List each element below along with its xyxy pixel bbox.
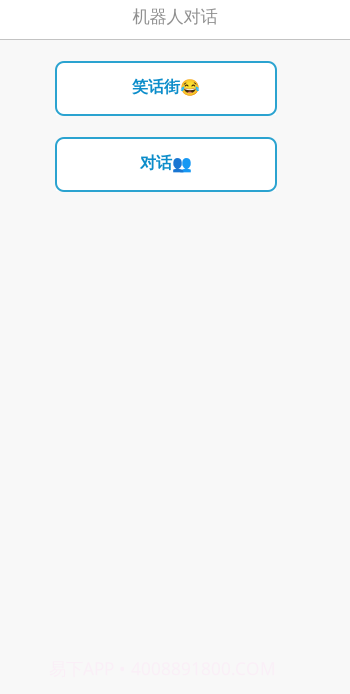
- button[interactable]: 对话👥: [56, 138, 276, 191]
- staticText: 机器人对话: [132, 6, 217, 27]
- staticText: 对话👥: [140, 153, 192, 173]
- staticText: 笑话街😂: [132, 77, 200, 97]
- button[interactable]: 笑话街😂: [56, 62, 276, 115]
